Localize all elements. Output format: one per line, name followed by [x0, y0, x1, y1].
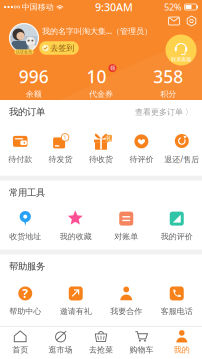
staticText: 礼 [106, 135, 111, 141]
staticText: 去签到 [50, 43, 74, 53]
button[interactable]: 我要合作 [101, 285, 151, 316]
button[interactable]: 待付款 [0, 133, 40, 164]
staticText: 10 [86, 65, 106, 88]
staticText: 首页 [12, 345, 28, 355]
staticText: 余额 [26, 89, 42, 99]
button[interactable]: 996 [0, 65, 67, 99]
staticText: 我的评价 [161, 232, 193, 241]
staticText: 邀请有礼 [60, 306, 92, 316]
staticText: 1 [64, 134, 67, 141]
button[interactable]: 去抢菜 [81, 327, 121, 359]
staticText: 9:30AM [95, 0, 133, 14]
button[interactable]: 首页 [0, 327, 40, 359]
staticText: 退还/售后 [164, 154, 199, 165]
staticText: 我的名字叫淘大集...（管理员） [42, 26, 152, 36]
button[interactable]: 查看更多订单 〉 [135, 107, 193, 117]
button[interactable]: 我的收藏 [50, 211, 101, 241]
staticText: 待收货 [89, 154, 113, 164]
button[interactable]: 10 [67, 65, 135, 99]
staticText: 常用工具 [9, 187, 45, 198]
button[interactable]: 我的评价 [151, 211, 202, 241]
staticText: 收货地址 [9, 232, 41, 241]
button[interactable]: 消息 [167, 15, 181, 27]
staticText: 我的 [174, 345, 190, 355]
staticText: 中国移动 [20, 2, 54, 12]
button[interactable]: 购物车 [121, 327, 162, 359]
button[interactable]: 礼 [81, 133, 121, 164]
staticText: 帮助服务 [9, 261, 45, 272]
staticText: 待发货 [49, 154, 73, 164]
staticText: 我的收藏 [60, 232, 92, 241]
button[interactable]: 客服电话 [151, 285, 202, 316]
staticText: 我要合作 [110, 306, 142, 316]
staticText: 待付款 [8, 154, 32, 164]
staticText: 我的订单 [9, 106, 45, 118]
staticText: 代金券 [89, 89, 113, 99]
button[interactable]: 退还/售后 [162, 133, 202, 165]
button[interactable]: 对账单 [101, 211, 151, 241]
staticText: 购物车 [129, 345, 153, 355]
button[interactable]: 联系客服 [164, 33, 197, 66]
staticText: 996 [19, 65, 49, 88]
staticText: 领 [110, 65, 115, 71]
staticText: 查看更多订单 〉 [135, 107, 193, 117]
staticText: ? [22, 285, 28, 301]
staticText: 去抢菜 [89, 345, 113, 355]
staticText: 认证会员 [16, 49, 32, 54]
staticText: 52% [164, 1, 182, 13]
staticText: 待评价 [129, 154, 153, 164]
staticText: 对账单 [114, 232, 138, 241]
staticText: 帮助中心 [9, 306, 41, 316]
button[interactable]: 我的 [162, 327, 202, 359]
button[interactable]: 收货地址 [0, 211, 50, 241]
staticText: 联系客服 [171, 56, 191, 63]
button[interactable]: 邀请有礼 [50, 285, 101, 316]
button[interactable]: 1 [40, 133, 81, 164]
staticText: 358 [153, 65, 183, 88]
staticText: 积分 [160, 89, 176, 99]
button[interactable]: ? [0, 285, 50, 316]
button[interactable]: 358 [135, 65, 202, 99]
staticText: 逛市场 [49, 345, 73, 355]
button[interactable]: 待评价 [121, 133, 162, 164]
staticText: 客服电话 [161, 306, 193, 316]
button[interactable]: 去签到 [39, 41, 79, 55]
button[interactable]: 逛市场 [40, 327, 81, 359]
button[interactable]: 设置 [184, 15, 198, 27]
